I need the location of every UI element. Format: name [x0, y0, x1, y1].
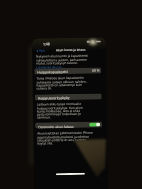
staticText: Nykyinen akun kunto ja kapasiteetti suht… [36, 54, 88, 65]
staticText: 1:48 [43, 41, 50, 46]
button[interactable]: Huippukapasiteetti [34, 67, 101, 75]
button[interactable]: Huippusuorituskyky [35, 93, 102, 101]
staticText: Akun kunto ja lataus [56, 48, 86, 52]
staticText: Akun kayttoian pidentamiseksi iPhone opp… [37, 131, 93, 145]
staticText: Tama ilmaisee akun kapasiteetin suhteess… [36, 76, 88, 90]
staticText: Laitteen akku tukee normaalia huippusuor… [37, 102, 83, 119]
staticText: Lisatietoja akusta... [36, 65, 64, 69]
staticText: Huippukapasiteetti [37, 69, 68, 74]
staticText: Optimoitu akun lataus [38, 124, 74, 128]
button[interactable]: Back to Ajustes [36, 48, 50, 52]
button[interactable]: Optimoitu akun lataus, on [89, 122, 100, 127]
button[interactable]: Optimoitu akun lataus [35, 121, 102, 129]
staticText: Ajus [39, 48, 45, 52]
staticText: Huippusuorituskyky [38, 95, 70, 100]
button[interactable]: Lisatietoja akusta... [36, 65, 64, 69]
staticText: 60 % [92, 68, 100, 73]
